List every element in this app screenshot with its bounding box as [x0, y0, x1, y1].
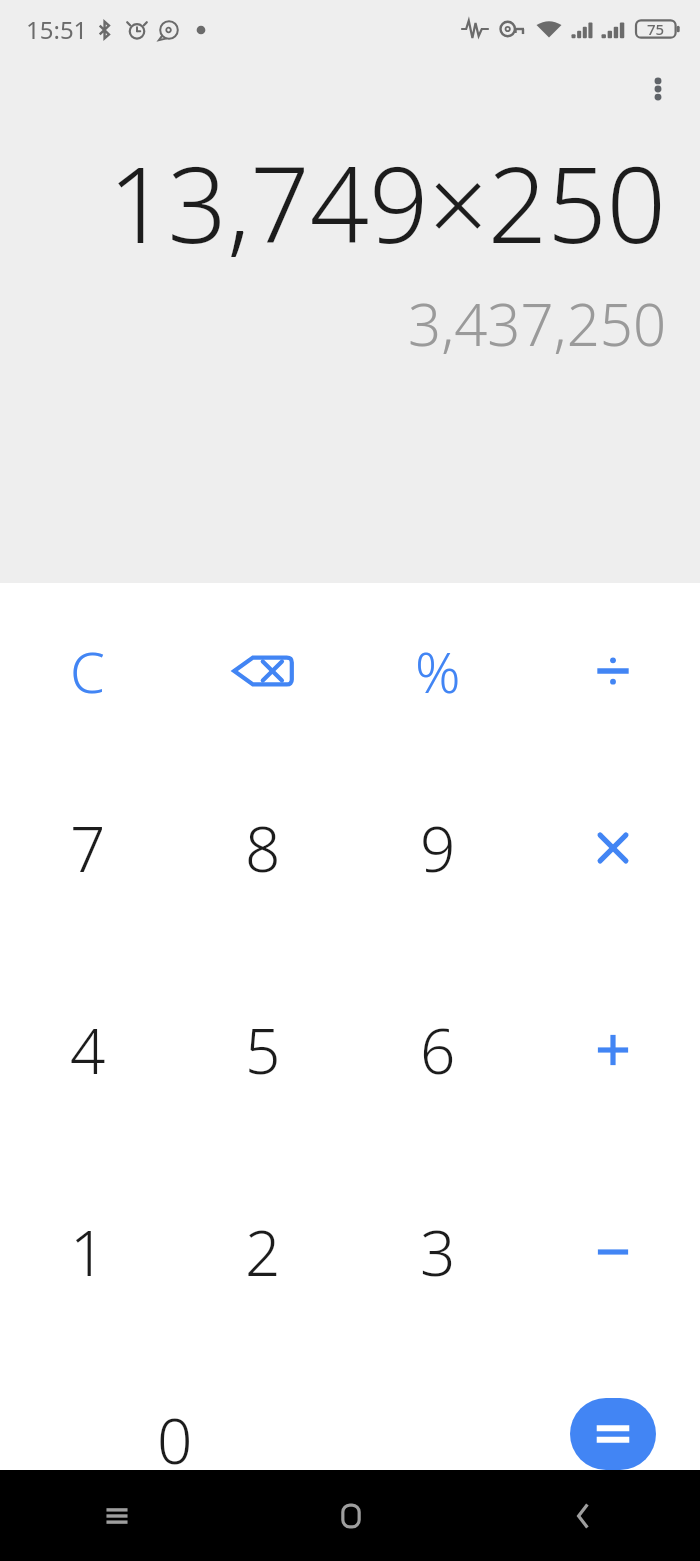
- button[interactable]: Recent apps: [0, 1470, 234, 1561]
- button[interactable]: 2: [175, 1206, 350, 1298]
- staticText: ,: [431, 1416, 445, 1488]
- button[interactable]: 4: [0, 1004, 175, 1096]
- staticText: %: [415, 633, 461, 709]
- button[interactable]: %: [350, 625, 525, 717]
- button[interactable]: 5: [175, 1004, 350, 1096]
- staticText: 0: [157, 1398, 193, 1470]
- staticText: 3,437,250: [408, 284, 666, 363]
- staticText: 1: [70, 1210, 106, 1294]
- button[interactable]: More options: [630, 61, 686, 117]
- staticText: 7: [70, 806, 106, 890]
- button[interactable]: Plus: [525, 1004, 700, 1096]
- button[interactable]: 9: [350, 802, 525, 894]
- staticText: 6: [420, 1008, 456, 1092]
- button[interactable]: C: [0, 625, 175, 717]
- other: Minus: [577, 1216, 649, 1288]
- staticText: 8: [245, 806, 281, 890]
- button[interactable]: 3: [350, 1206, 525, 1298]
- button[interactable]: 8: [175, 802, 350, 894]
- staticText: 75: [647, 19, 665, 39]
- button[interactable]: Multiply: [525, 802, 700, 894]
- other: Multiply: [577, 812, 649, 884]
- button[interactable]: 7: [0, 802, 175, 894]
- staticText: 5: [245, 1008, 281, 1092]
- staticText: 13,749×250: [108, 132, 666, 274]
- button[interactable]: 1: [0, 1206, 175, 1298]
- staticText: 2: [245, 1210, 281, 1294]
- button[interactable]: 6: [350, 1004, 525, 1096]
- staticText: 4: [70, 1008, 106, 1092]
- other: Divide: [577, 635, 649, 707]
- button[interactable]: Equals: [570, 1398, 656, 1470]
- button[interactable]: Minus: [525, 1206, 700, 1298]
- button[interactable]: Divide: [525, 625, 700, 717]
- staticText: 3: [420, 1210, 456, 1294]
- button[interactable]: Back: [467, 1470, 700, 1561]
- other: Plus: [577, 1014, 649, 1086]
- staticText: 9: [420, 806, 456, 890]
- button[interactable]: Home: [234, 1470, 467, 1561]
- other: Backspace: [227, 635, 299, 707]
- button[interactable]: Backspace: [175, 625, 350, 717]
- staticText: 15:51: [26, 13, 88, 46]
- button[interactable]: 0: [0, 1398, 350, 1470]
- staticText: C: [70, 633, 105, 709]
